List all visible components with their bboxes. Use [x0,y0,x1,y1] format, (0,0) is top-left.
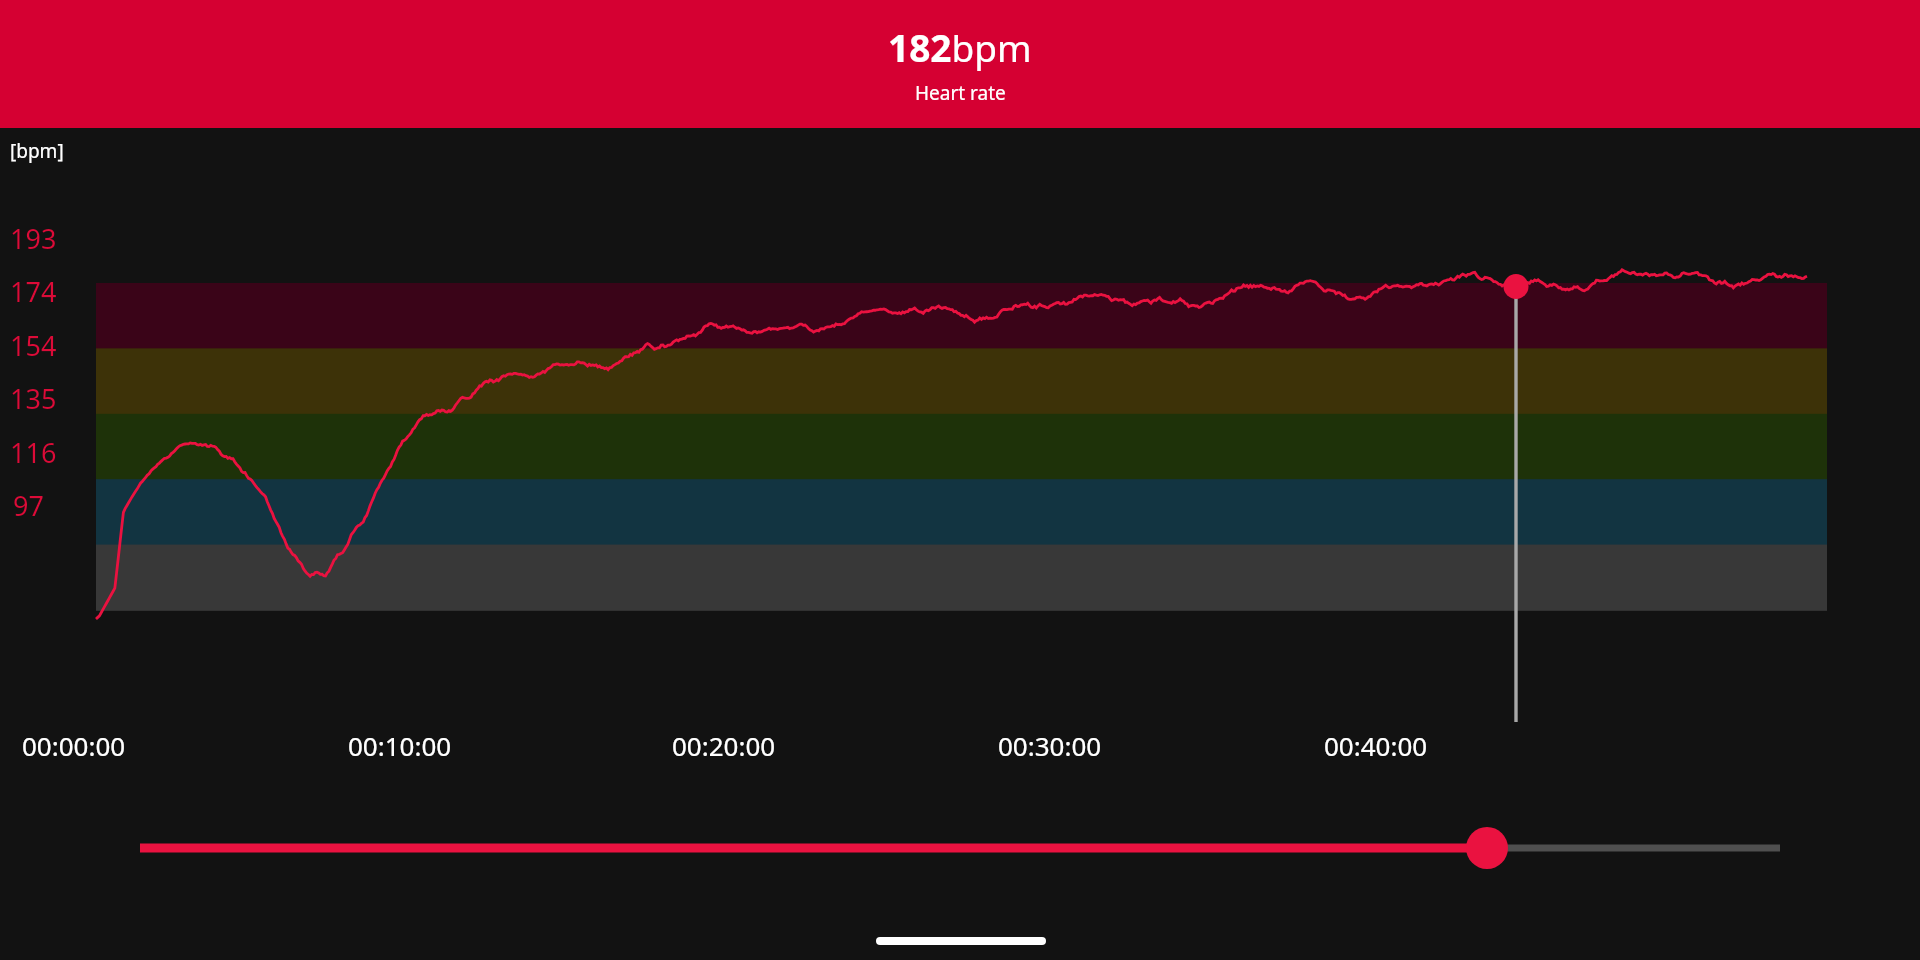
staticText: 182bpm [888,22,1032,72]
staticText: 00:30:00 [998,728,1102,763]
staticText: 116 [10,434,57,471]
staticText: 00:40:00 [1324,728,1428,763]
staticText: 97 [13,487,44,524]
staticText: Heart rate [915,80,1006,106]
staticText: 154 [10,327,57,364]
button[interactable]: 182bpm [0,0,1920,128]
staticText: 135 [10,380,57,417]
staticText: 00:10:00 [348,728,452,763]
staticText: 193 [10,220,57,257]
staticText: 00:00:00 [22,728,126,763]
staticText: 174 [10,273,57,310]
staticText: 00:20:00 [672,728,776,763]
button[interactable]: Timeline position [140,820,1780,876]
staticText: [bpm] [10,138,64,164]
